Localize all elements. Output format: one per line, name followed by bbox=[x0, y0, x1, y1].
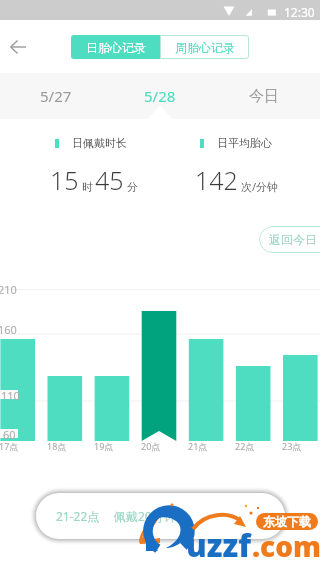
button[interactable]: 返回今日 bbox=[259, 226, 320, 253]
staticText: 返回今日 bbox=[269, 232, 317, 247]
staticText: .com bbox=[252, 527, 320, 565]
staticText: 21-22点 bbox=[56, 508, 100, 524]
button[interactable]: 今日 bbox=[224, 73, 304, 119]
staticText: 21点 bbox=[188, 440, 208, 452]
staticText: 日平均胎心 bbox=[217, 136, 272, 150]
staticText: uzzf bbox=[186, 524, 252, 566]
staticText: 20点 bbox=[141, 440, 161, 452]
button[interactable]: Back bbox=[3, 32, 33, 62]
staticText: 142 bbox=[195, 163, 238, 197]
staticText: 110 bbox=[1, 388, 20, 403]
button[interactable]: 周胎心记录 bbox=[160, 35, 249, 59]
staticText: 佩戴20分钟 bbox=[114, 508, 176, 524]
staticText: 日佩戴时长 bbox=[72, 136, 127, 150]
button[interactable]: 5/27 bbox=[16, 73, 96, 119]
staticText: 19点 bbox=[94, 440, 114, 452]
staticText: 210 bbox=[0, 282, 17, 297]
button[interactable]: 日胎心记录 bbox=[71, 35, 160, 59]
staticText: 60 bbox=[3, 427, 16, 442]
staticText: 日胎心记录 bbox=[86, 40, 146, 55]
button[interactable]: 5/28 bbox=[120, 73, 200, 119]
staticText: 12:30 bbox=[284, 4, 315, 20]
staticText: 5/27 bbox=[40, 86, 72, 106]
staticText: 次/分钟 bbox=[241, 179, 279, 194]
staticText: 东坡下载 bbox=[263, 514, 311, 529]
button[interactable]: 21-22点 bbox=[36, 493, 285, 539]
staticText: 22点 bbox=[235, 440, 255, 452]
staticText: 45 bbox=[95, 163, 124, 197]
staticText: 时 bbox=[82, 180, 93, 194]
staticText: 分 bbox=[127, 180, 138, 194]
staticText: 今日 bbox=[249, 87, 279, 106]
staticText: 23点 bbox=[282, 440, 302, 452]
staticText: 17点 bbox=[0, 440, 19, 452]
staticText: 160 bbox=[0, 322, 17, 337]
staticText: 5/28 bbox=[144, 86, 176, 106]
staticText: 18点 bbox=[47, 440, 67, 452]
staticText: 周胎心记录 bbox=[175, 40, 235, 55]
staticText: 15 bbox=[50, 163, 79, 197]
